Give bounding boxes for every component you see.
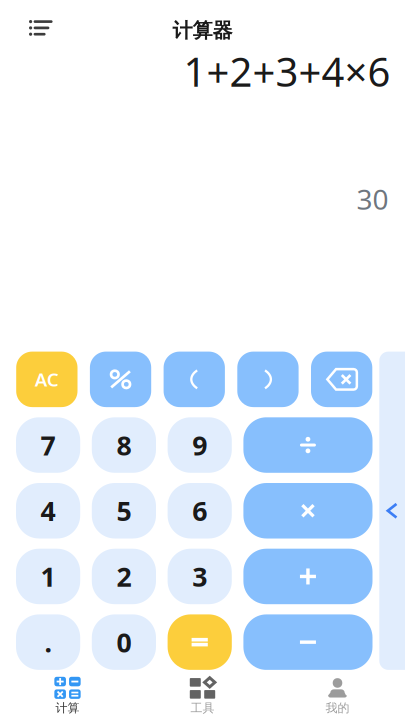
staticText: 30 [356, 180, 388, 217]
button[interactable]: . [16, 614, 80, 670]
staticText: 工具 [190, 701, 214, 715]
button[interactable]: 工具 [135, 670, 270, 720]
staticText: 2 [116, 559, 131, 594]
staticText: AC [35, 367, 59, 392]
staticText: 0 [116, 624, 131, 660]
staticText: 7 [41, 427, 56, 463]
button[interactable]: Minus [243, 614, 372, 670]
button[interactable]: 我的 [270, 670, 405, 720]
button[interactable]: 计算 [0, 670, 135, 720]
staticText: 4 [41, 493, 56, 528]
staticText: 3 [192, 559, 207, 594]
button[interactable]: 4 [16, 483, 80, 538]
staticText: 计算器 [172, 18, 232, 43]
button[interactable]: 5 [92, 483, 156, 538]
button[interactable]: 3 [168, 549, 232, 604]
staticText: 我的 [325, 701, 349, 715]
button[interactable]: Multiply [243, 483, 372, 538]
button[interactable]: Open parenthesis [164, 352, 225, 407]
staticText: 9 [192, 427, 207, 463]
staticText: 计算 [55, 701, 79, 715]
button[interactable]: Backspace [311, 352, 372, 407]
button[interactable]: Equals [168, 614, 232, 670]
staticText: 1+2+3+4×6 [183, 45, 390, 98]
button[interactable]: 6 [168, 483, 232, 538]
staticText: 1 [41, 559, 56, 594]
button[interactable]: Percent [90, 352, 151, 407]
button[interactable]: More functions [379, 352, 405, 670]
button[interactable]: Plus [243, 549, 372, 604]
button[interactable]: 8 [92, 417, 156, 473]
staticText: 5 [116, 493, 131, 528]
button[interactable]: History [19, 6, 63, 50]
button[interactable]: 1 [16, 549, 80, 604]
button[interactable]: 2 [92, 549, 156, 604]
button[interactable]: Divide [243, 417, 372, 473]
button[interactable]: AC [16, 352, 77, 407]
staticText: . [45, 624, 52, 660]
staticText: 6 [192, 493, 207, 528]
button[interactable]: 0 [92, 614, 156, 670]
staticText: 8 [116, 427, 131, 463]
button[interactable]: Close parenthesis [237, 352, 299, 407]
button[interactable]: 7 [16, 417, 80, 473]
button[interactable]: 9 [168, 417, 232, 473]
